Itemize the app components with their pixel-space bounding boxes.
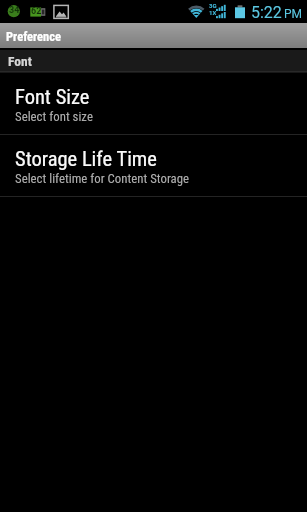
staticText: Font — [8, 53, 32, 69]
staticText: 62 — [31, 6, 42, 17]
staticText: Select font size — [15, 109, 93, 124]
staticText: 3G — [209, 2, 217, 9]
staticText: PM — [284, 7, 303, 21]
staticText: 1X — [209, 9, 217, 16]
staticText: Select lifetime for Content Storage — [15, 171, 189, 186]
button[interactable]: Font Size — [0, 73, 307, 134]
staticText: Font Size — [15, 85, 90, 109]
staticText: Preference — [6, 29, 61, 44]
button[interactable]: Storage Life Time — [0, 135, 307, 196]
staticText: Storage Life Time — [15, 147, 157, 171]
staticText: 34 — [9, 5, 20, 16]
staticText: 5:22 — [251, 3, 282, 22]
